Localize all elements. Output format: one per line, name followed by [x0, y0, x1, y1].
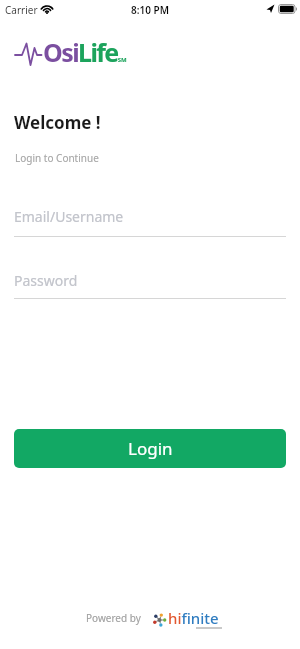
button[interactable]: Powered by: [0, 600, 300, 636]
staticText: Password: [14, 271, 78, 290]
staticText: Login to Continue: [15, 151, 99, 165]
button[interactable]: Password: [14, 267, 286, 299]
staticText: Carrier: [5, 3, 38, 17]
staticText: Welcome !: [14, 111, 101, 134]
staticText: Powered by: [86, 611, 141, 625]
staticText: 8:10 PM: [131, 3, 169, 17]
button[interactable]: Login: [14, 429, 286, 468]
staticText: hifinite: [168, 608, 219, 628]
button[interactable]: Email/Username: [14, 205, 286, 237]
staticText: OsiLifeSM: [43, 35, 127, 65]
staticText: Login: [128, 437, 173, 460]
staticText: Email/Username: [14, 207, 124, 226]
